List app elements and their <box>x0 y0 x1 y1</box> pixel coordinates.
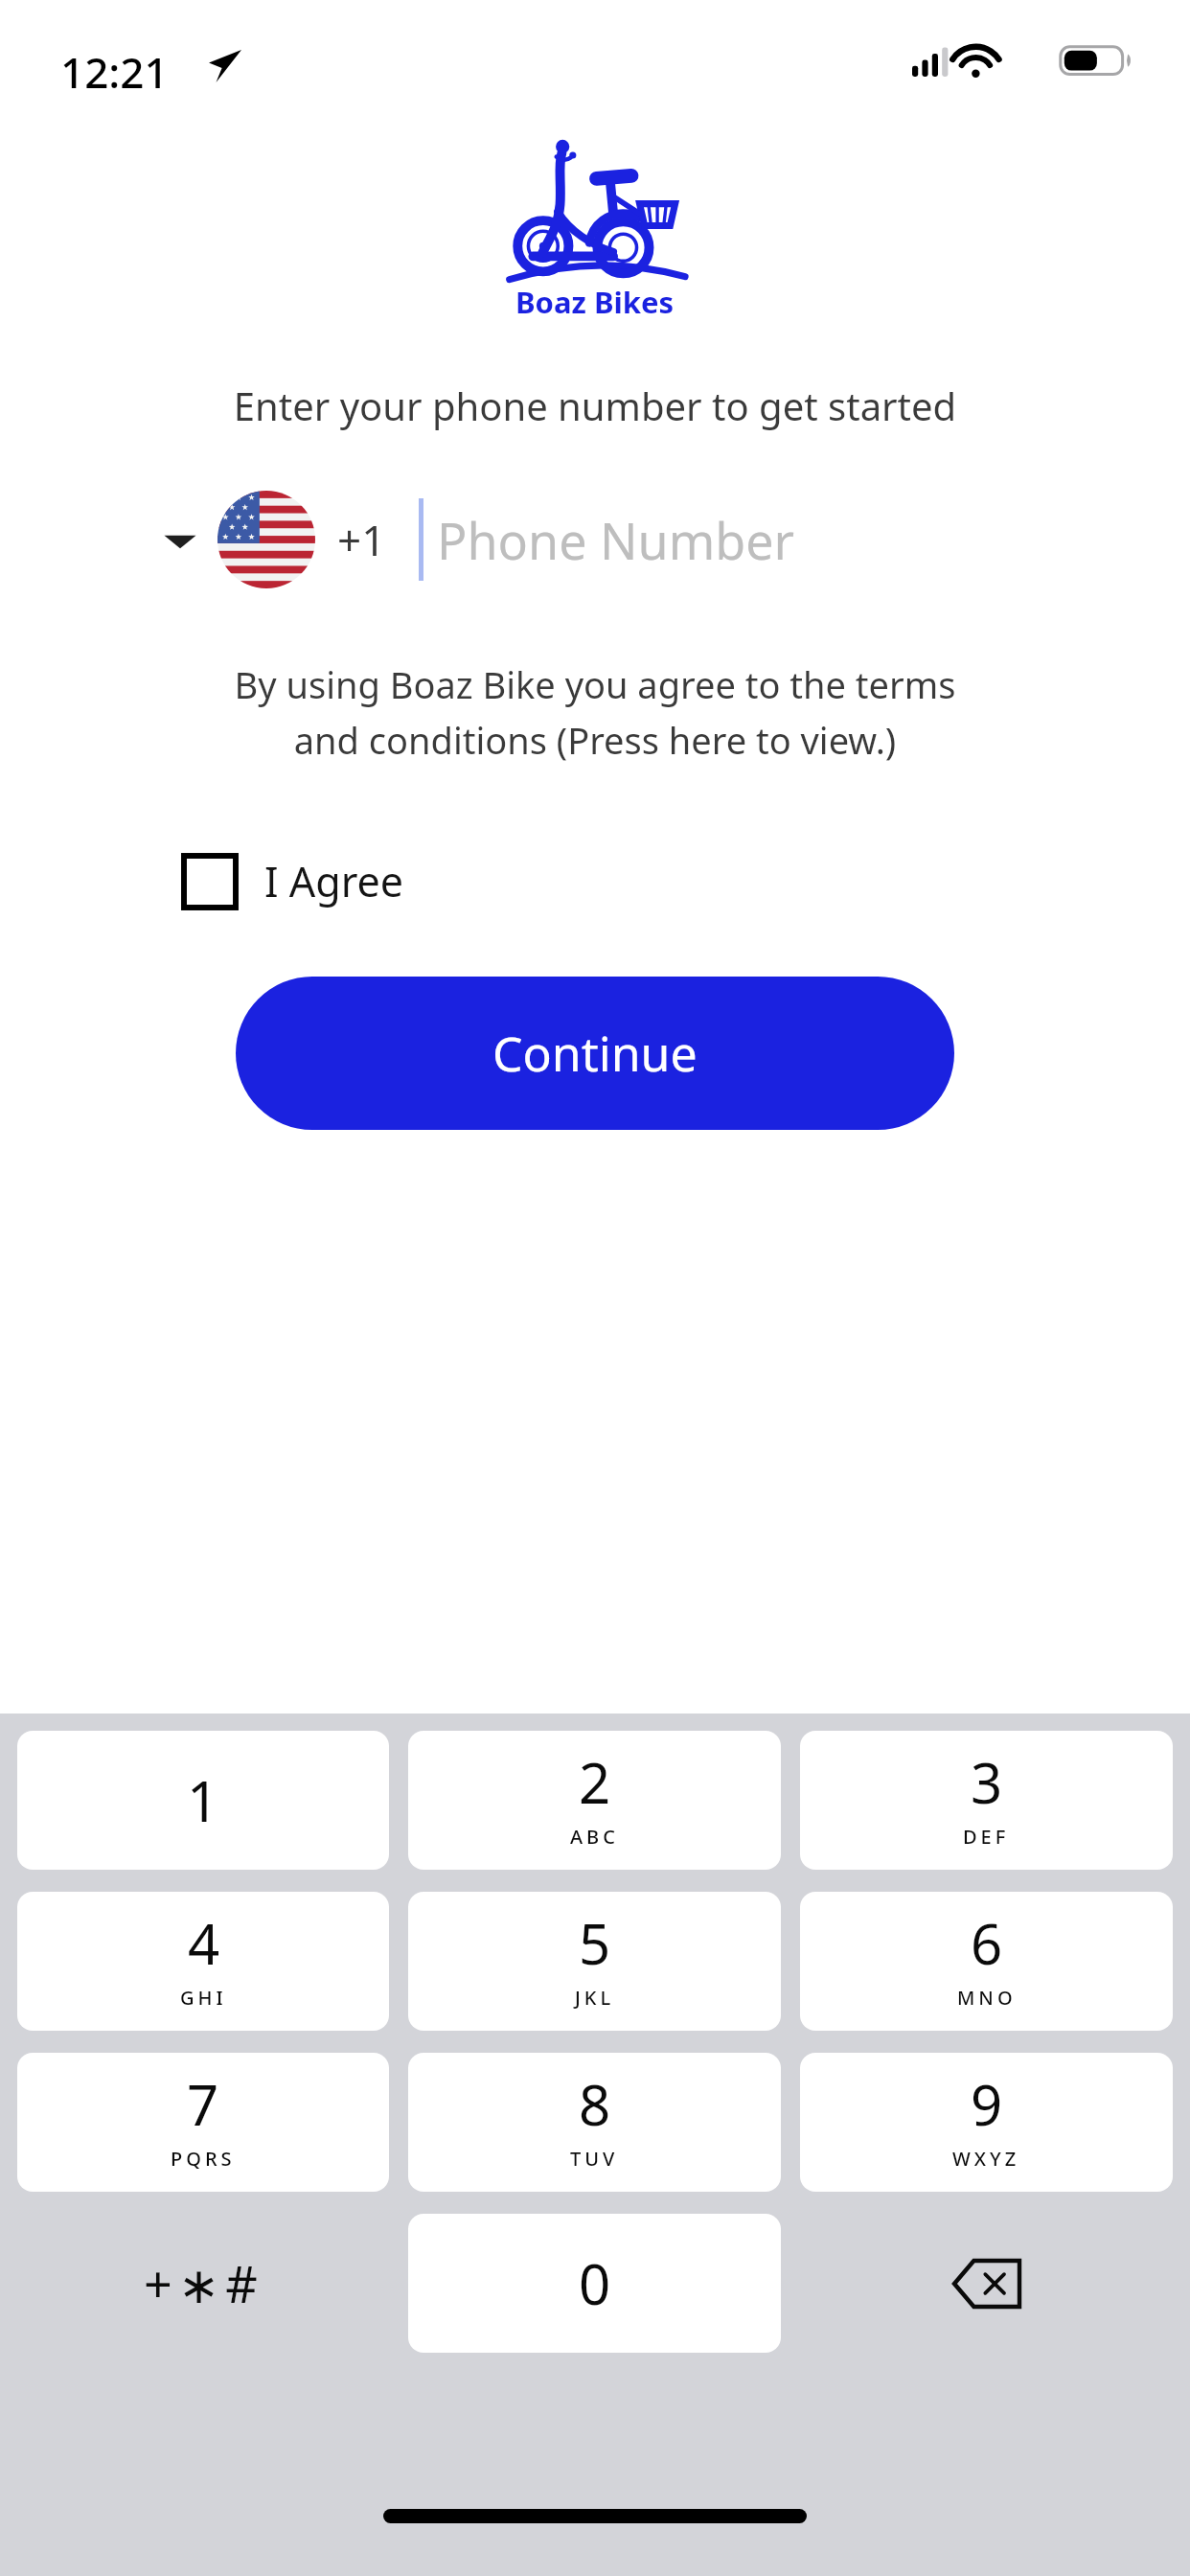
staticText: +∗# <box>144 2249 263 2317</box>
staticText: DEF <box>963 1824 1010 1850</box>
button[interactable]: 4 <box>17 1892 389 2031</box>
button[interactable]: I Agree <box>184 853 416 909</box>
staticText: JKL <box>575 1985 615 2011</box>
staticText: Enter your phone number to get started <box>0 379 1190 431</box>
staticText: TUV <box>570 2146 619 2172</box>
button[interactable]: Select country code <box>163 479 386 600</box>
staticText: Boaz Bikes <box>515 282 675 322</box>
staticText: I Agree <box>264 853 404 909</box>
button[interactable]: 2 <box>408 1731 781 1870</box>
staticText: PQRS <box>171 2146 236 2172</box>
staticText: +1 <box>337 511 386 568</box>
staticText: Continue <box>492 1021 698 1086</box>
button[interactable]: 7 <box>17 2053 389 2192</box>
button[interactable]: 9 <box>800 2053 1173 2192</box>
button[interactable]: 0 <box>408 2214 781 2353</box>
staticText: 7 <box>187 2066 219 2142</box>
button[interactable]: By using Boaz Bike you agree to the term… <box>203 659 987 765</box>
staticText: Phone Number <box>437 506 795 574</box>
staticText: 6 <box>971 1905 1003 1981</box>
staticText: MNO <box>957 1985 1017 2011</box>
button[interactable]: 1 <box>17 1731 389 1870</box>
button[interactable]: 8 <box>408 2053 781 2192</box>
staticText: ABC <box>570 1824 619 1850</box>
staticText: 8 <box>579 2066 611 2142</box>
staticText: 9 <box>971 2066 1003 2142</box>
staticText: 0 <box>579 2245 611 2321</box>
staticText: WXYZ <box>952 2146 1020 2172</box>
staticText: 1 <box>187 1762 219 1838</box>
button[interactable]: 3 <box>800 1731 1173 1870</box>
button[interactable]: 6 <box>800 1892 1173 2031</box>
staticText: 12:21 <box>60 43 169 101</box>
button[interactable]: Phone Number <box>419 479 1190 600</box>
button[interactable]: Continue <box>236 977 954 1130</box>
staticText: 5 <box>579 1905 611 1981</box>
staticText: 3 <box>971 1744 1003 1820</box>
staticText: 2 <box>579 1744 611 1820</box>
staticText: 4 <box>188 1905 220 1981</box>
button[interactable]: 5 <box>408 1892 781 2031</box>
staticText: GHI <box>180 1985 227 2011</box>
button[interactable]: Symbols <box>17 2214 389 2353</box>
button[interactable]: Backspace <box>800 2214 1173 2353</box>
